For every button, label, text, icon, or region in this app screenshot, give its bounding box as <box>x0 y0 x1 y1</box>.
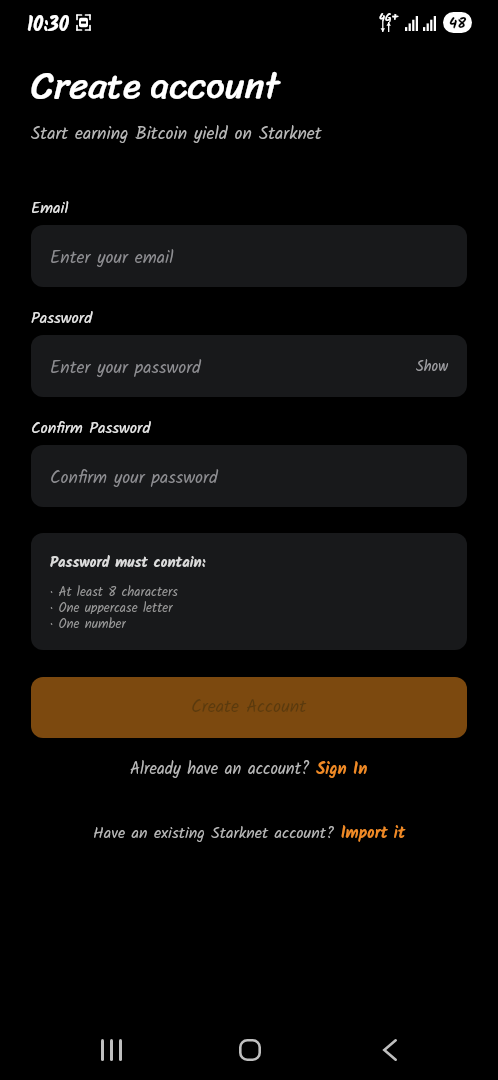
staticText: · At least 8 characters <box>50 582 178 598</box>
button[interactable]: Enter your password <box>31 335 467 397</box>
staticText: Password must contain: <box>50 551 206 574</box>
staticText: Start earning Bitcoin yield on Starknet <box>31 120 322 148</box>
staticText: Confirm Password <box>31 416 151 442</box>
staticText: 4G+ <box>379 9 399 27</box>
staticText: Email <box>31 196 69 222</box>
staticText: Password <box>31 306 93 332</box>
staticText: 48 <box>449 12 467 33</box>
staticText: Enter your email <box>50 244 449 272</box>
staticText: · One uppercase letter <box>50 598 173 614</box>
button[interactable]: Back <box>366 1026 414 1074</box>
staticText: Have an existing Starknet account? Impor… <box>93 821 406 847</box>
staticText: Enter your password <box>50 354 416 382</box>
button[interactable]: Show <box>416 355 449 378</box>
staticText: Confirm your password <box>50 464 449 492</box>
other: Screen recording <box>76 14 91 31</box>
staticText: Create Account <box>191 693 307 722</box>
button[interactable]: Create Account <box>31 677 467 738</box>
staticText: Already have an account? Sign In <box>130 756 368 782</box>
button[interactable]: Confirm your password <box>31 445 467 507</box>
button[interactable]: Have an existing Starknet account? Impor… <box>0 821 498 847</box>
staticText: Create account <box>31 53 280 118</box>
button[interactable]: Enter your email <box>31 225 467 287</box>
button[interactable]: Recent apps <box>87 1026 135 1074</box>
staticText: 10:30 <box>27 10 69 42</box>
button[interactable]: Already have an account? Sign In <box>0 756 498 782</box>
staticText: · One number <box>50 614 126 630</box>
button[interactable]: Home <box>226 1026 274 1074</box>
